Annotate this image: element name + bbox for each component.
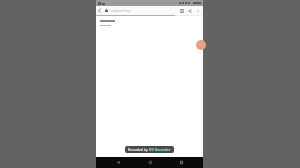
button[interactable]: Back bbox=[108, 157, 128, 168]
button[interactable]: Home bbox=[140, 157, 160, 168]
staticText: DU Recorder bbox=[149, 147, 171, 152]
staticText: Recorded by bbox=[128, 147, 149, 152]
button[interactable]: More options bbox=[194, 6, 202, 15]
button[interactable]: Recent apps bbox=[171, 157, 191, 168]
button[interactable]: Share bbox=[186, 6, 194, 15]
button[interactable]: Tabs bbox=[178, 6, 186, 15]
button[interactable]: Notification badge bbox=[196, 40, 206, 50]
button[interactable]: nodeconf.org bbox=[110, 6, 178, 15]
button[interactable]: Site security info bbox=[104, 8, 109, 13]
staticText: nodeconf.org bbox=[110, 9, 131, 13]
button[interactable]: Back bbox=[96, 7, 103, 14]
